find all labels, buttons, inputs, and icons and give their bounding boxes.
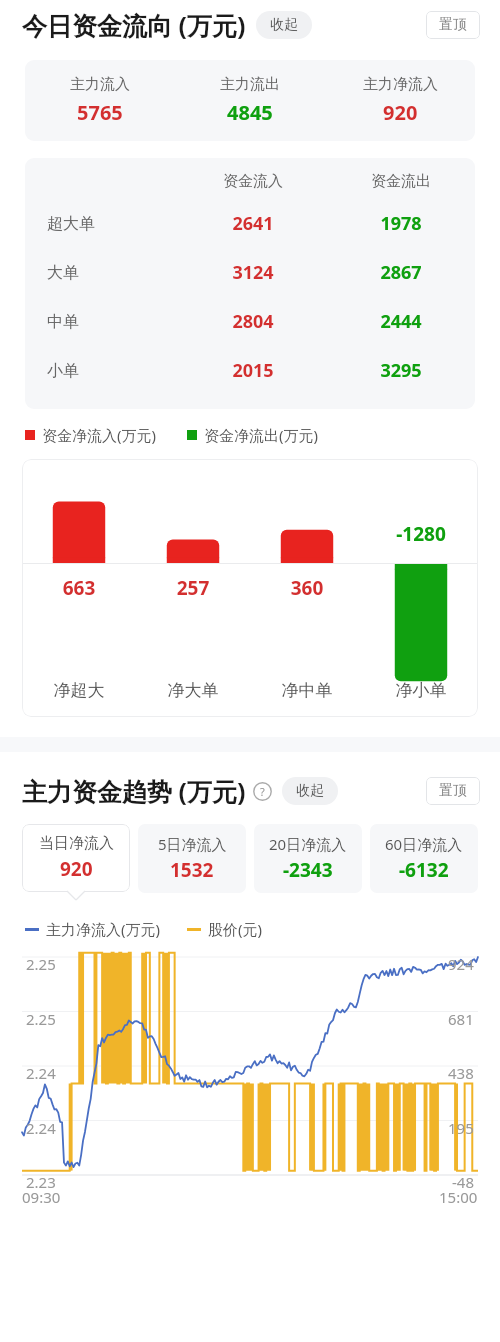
staticText: 681 [448, 1009, 474, 1029]
staticText: 中单 [47, 312, 79, 332]
staticText: 置顶 [439, 16, 467, 34]
staticText: 今日资金流向 (万元) [22, 8, 246, 42]
button[interactable]: 置顶 [426, 11, 480, 39]
staticText: 2.24 [26, 1118, 56, 1138]
staticText: 15:00 [439, 1187, 478, 1207]
staticText: 663 [22, 575, 136, 601]
staticText: -1280 [364, 521, 478, 547]
staticText: 资金流出 [327, 172, 475, 191]
staticText: 2.25 [26, 1009, 56, 1029]
staticText: 920 [60, 856, 93, 882]
staticText: 1978 [327, 211, 475, 236]
staticText: 主力流出 [220, 75, 280, 94]
button[interactable]: 60日净流入 [370, 824, 478, 893]
button[interactable]: 5日净流入 [138, 824, 246, 893]
staticText: -48 [452, 1172, 474, 1192]
staticText: 257 [136, 575, 250, 601]
staticText: -2343 [283, 857, 333, 883]
staticText: 5765 [77, 99, 123, 126]
staticText: 主力净流入(万元) [46, 919, 161, 939]
button[interactable]: 当日净流入 [22, 824, 130, 892]
staticText: -6132 [399, 857, 449, 883]
staticText: 438 [448, 1063, 474, 1083]
staticText: 3295 [327, 358, 475, 383]
staticText: 小单 [47, 361, 79, 381]
staticText: 195 [448, 1118, 474, 1138]
button[interactable]: 收起 [282, 777, 338, 805]
staticText: 2.23 [26, 1172, 56, 1192]
staticText: 大单 [47, 263, 79, 283]
staticText: 股价(元) [208, 919, 263, 939]
staticText: 净超大 [22, 680, 136, 701]
staticText: 净中单 [250, 680, 364, 701]
staticText: 净小单 [364, 680, 478, 701]
staticText: 收起 [296, 782, 324, 800]
staticText: 资金净流出(万元) [204, 425, 319, 445]
staticText: 当日净流入 [39, 834, 114, 853]
staticText: 收起 [270, 16, 298, 34]
staticText: 360 [250, 575, 364, 601]
staticText: 主力资金趋势 (万元) [22, 774, 246, 808]
staticText: 资金流入 [179, 172, 327, 191]
staticText: 2.24 [26, 1063, 56, 1083]
staticText: 3124 [179, 260, 327, 285]
staticText: 1532 [170, 857, 214, 883]
button[interactable]: Help [253, 782, 272, 801]
button[interactable]: 置顶 [426, 777, 480, 805]
staticText: 2804 [179, 309, 327, 334]
staticText: 主力流入 [70, 75, 130, 94]
staticText: 920 [383, 99, 418, 126]
staticText: 2444 [327, 309, 475, 334]
staticText: 2867 [327, 260, 475, 285]
button[interactable]: 收起 [256, 11, 312, 39]
staticText: 4845 [227, 99, 273, 126]
staticText: 净大单 [136, 680, 250, 701]
staticText: 924 [448, 954, 474, 974]
staticText: 2641 [179, 211, 327, 236]
staticText: 置顶 [439, 782, 467, 800]
staticText: 20日净流入 [269, 834, 347, 854]
staticText: 资金净流入(万元) [42, 425, 157, 445]
button[interactable]: 20日净流入 [254, 824, 362, 893]
staticText: 超大单 [47, 214, 95, 234]
staticText: 2015 [179, 358, 327, 383]
staticText: 主力净流入 [363, 75, 438, 94]
staticText: 2.25 [26, 954, 56, 974]
staticText: 60日净流入 [385, 834, 463, 854]
staticText: 09:30 [22, 1187, 61, 1207]
staticText: ? [260, 784, 265, 799]
staticText: 5日净流入 [158, 834, 227, 854]
